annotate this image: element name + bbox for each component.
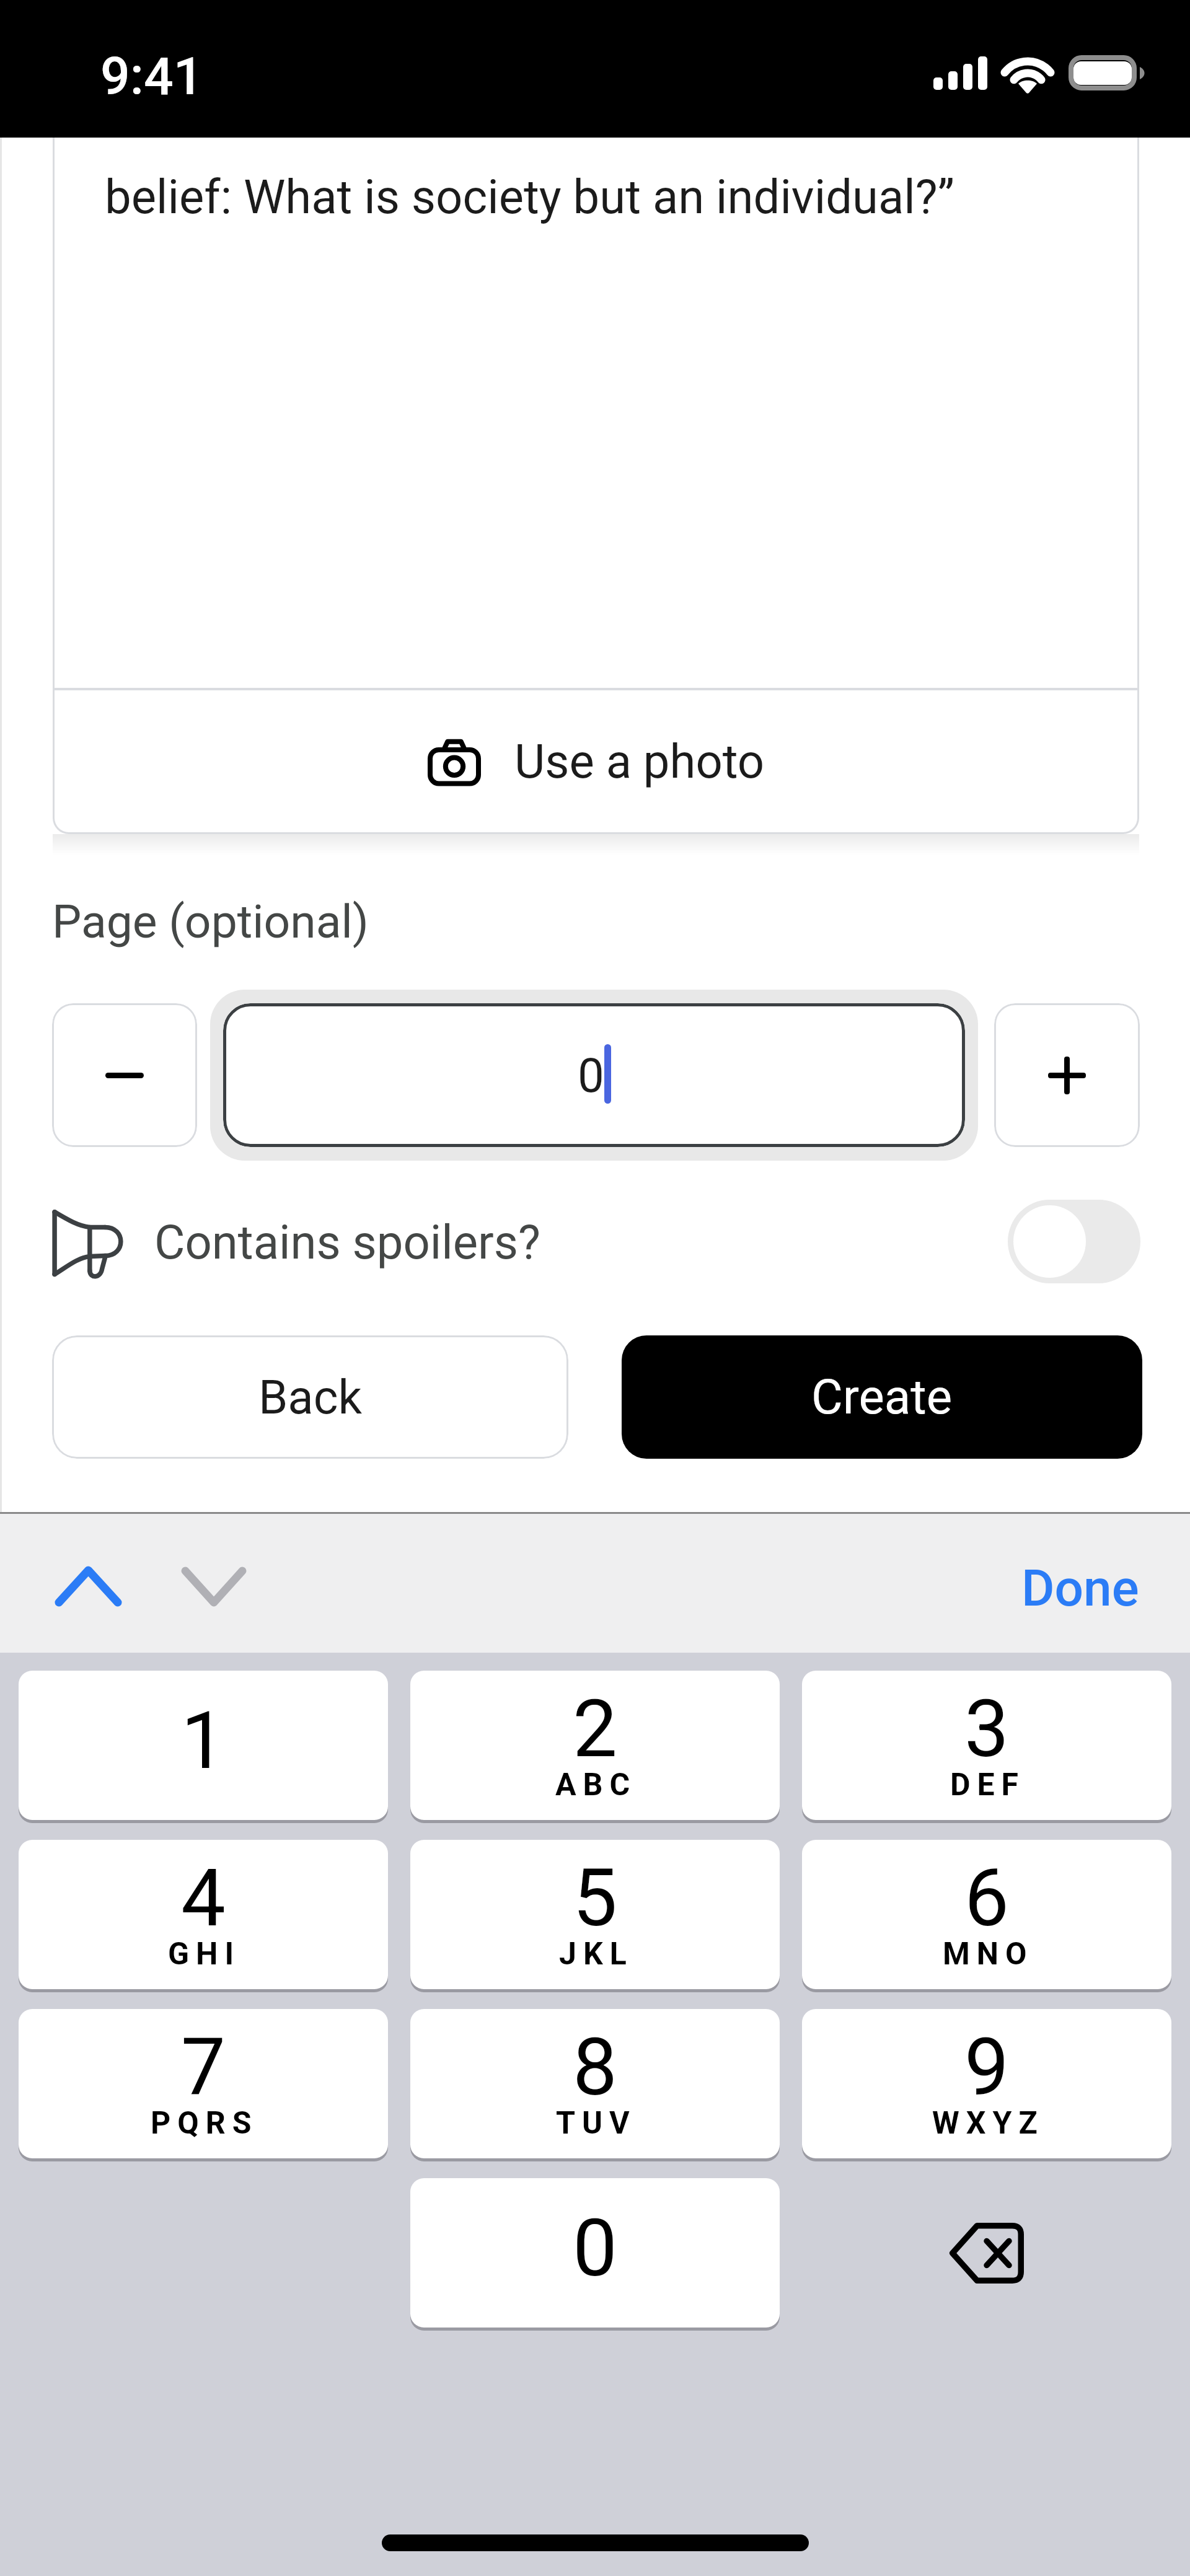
button[interactable]: Previous field xyxy=(45,1543,131,1630)
button[interactable]: 0 xyxy=(410,2178,780,2328)
button[interactable]: 3 xyxy=(802,1671,1171,1820)
staticText: 6 xyxy=(964,1852,1009,1945)
staticText: PQRS xyxy=(151,2105,258,2142)
button[interactable]: 9 xyxy=(802,2009,1171,2158)
staticText: Use a photo xyxy=(514,734,765,789)
staticText: Create xyxy=(811,1369,953,1425)
button[interactable]: 0 xyxy=(223,1003,965,1147)
button[interactable]: 4 xyxy=(19,1840,388,1989)
staticText: it is the deep reply at the heart of the… xyxy=(105,138,1026,224)
button[interactable]: Contains spoilers? xyxy=(0,1200,1190,1284)
button[interactable]: Create xyxy=(622,1335,1142,1459)
button[interactable]: 5 xyxy=(410,1840,780,1989)
staticText: 2 xyxy=(573,1682,617,1775)
staticText: Done xyxy=(1021,1558,1139,1618)
staticText: 8 xyxy=(573,2021,617,2114)
staticText: ABC xyxy=(555,1767,637,1803)
button[interactable]: 1 xyxy=(19,1671,388,1820)
staticText: GHI xyxy=(168,1936,241,1972)
button[interactable]: Contains spoilers toggle xyxy=(1008,1200,1140,1283)
button[interactable]: 7 xyxy=(19,2009,388,2158)
staticText: 4 xyxy=(181,1852,226,1945)
staticText: 9:41 xyxy=(100,46,203,107)
staticText: WXYZ xyxy=(932,2105,1044,2142)
staticText: Back xyxy=(258,1369,362,1425)
button[interactable]: Done xyxy=(1021,1558,1139,1618)
button[interactable]: Back xyxy=(52,1335,568,1459)
button[interactable]: 8 xyxy=(410,2009,780,2158)
staticText: MNO xyxy=(943,1936,1034,1972)
staticText: 9 xyxy=(964,2021,1009,2114)
staticText: JKL xyxy=(559,1936,633,1972)
staticText: 1 xyxy=(181,1694,226,1787)
staticText: Page (optional) xyxy=(52,894,369,949)
staticText: 0 xyxy=(578,1048,604,1103)
button[interactable]: Increase page xyxy=(994,1003,1140,1147)
button[interactable]: Next field xyxy=(170,1543,257,1630)
staticText: 0 xyxy=(573,2202,617,2295)
staticText: DEF xyxy=(950,1767,1026,1803)
button[interactable]: Use a photo xyxy=(53,688,1139,834)
button[interactable]: Decrease page xyxy=(52,1003,197,1147)
button[interactable]: 6 xyxy=(802,1840,1171,1989)
staticText: Contains spoilers? xyxy=(154,1215,540,1270)
button[interactable]: Backspace xyxy=(802,2178,1171,2328)
staticText: TUV xyxy=(556,2105,637,2142)
staticText: 5 xyxy=(573,1852,617,1945)
button[interactable]: 2 xyxy=(410,1671,780,1820)
staticText: 7 xyxy=(181,2021,226,2114)
staticText: 3 xyxy=(964,1682,1009,1775)
